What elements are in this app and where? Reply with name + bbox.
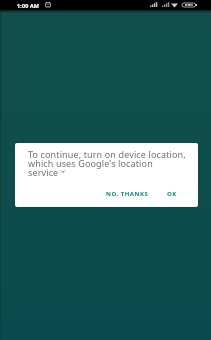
other: Battery bbox=[182, 3, 197, 7]
staticText: 1:00 AM bbox=[17, 2, 40, 9]
staticText: NO, THANKS bbox=[106, 190, 149, 198]
other: Alarm set bbox=[45, 2, 51, 7]
button[interactable]: NO, THANKS bbox=[104, 187, 151, 201]
button[interactable]: OK bbox=[165, 187, 179, 201]
staticText: To continue, turn on device location, wh… bbox=[28, 148, 186, 179]
other: Wi-Fi bbox=[171, 3, 178, 8]
other: Signal strength bbox=[150, 2, 158, 7]
staticText: OK bbox=[167, 190, 177, 198]
other: Signal strength bbox=[162, 2, 170, 7]
other: Expand details bbox=[61, 170, 65, 173]
